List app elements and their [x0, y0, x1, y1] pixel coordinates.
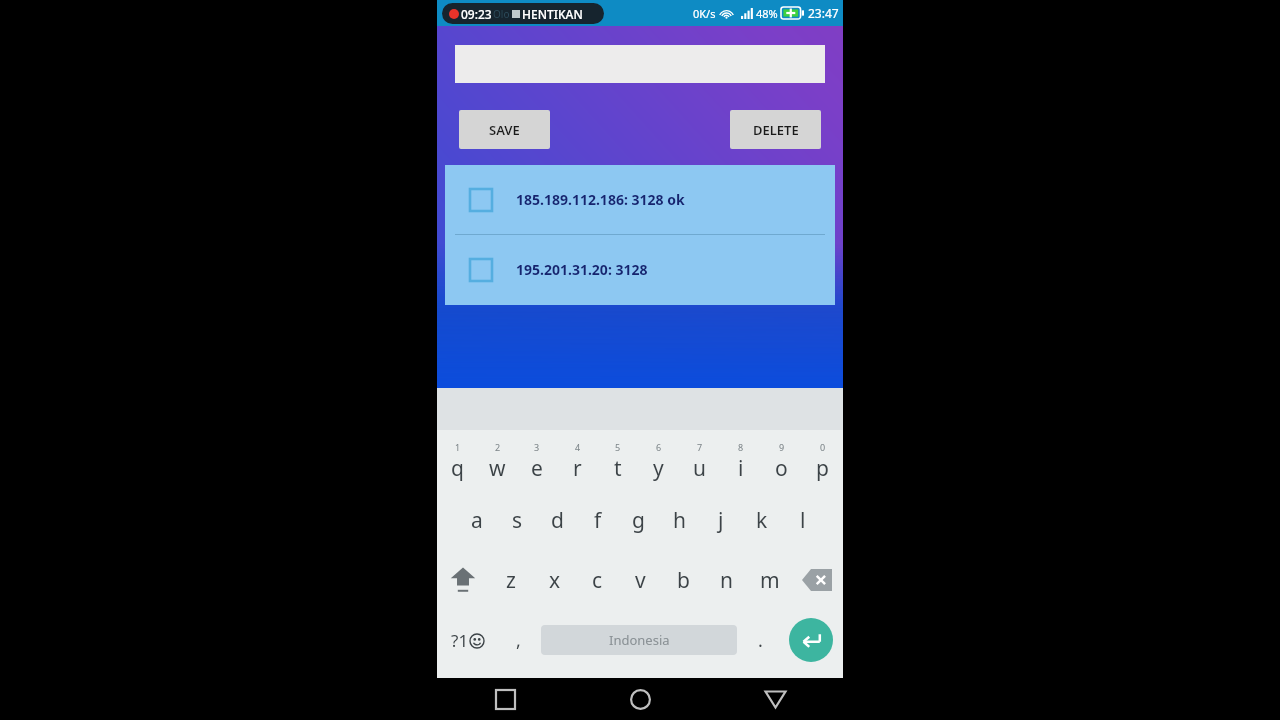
button[interactable]: 4 — [557, 433, 597, 490]
button[interactable]: Symbols and emoji — [437, 610, 499, 670]
staticText: 0K/s — [693, 6, 716, 21]
staticText: k — [756, 506, 768, 535]
staticText: ?1 — [451, 629, 469, 652]
staticText: g — [632, 506, 645, 535]
button[interactable]: 2 — [477, 433, 517, 490]
staticText: p — [816, 454, 829, 483]
button[interactable]: j — [700, 490, 741, 550]
staticText: m — [760, 566, 780, 595]
staticText: j — [718, 506, 724, 535]
staticText: 23:47 — [808, 5, 839, 21]
staticText: b — [677, 566, 690, 595]
staticText: SAVE — [489, 121, 520, 139]
staticText: 195.201.31.20: 3128 — [516, 260, 648, 279]
staticText: h — [673, 506, 686, 535]
button[interactable]: 195.201.31.20: 3128 — [445, 235, 835, 304]
staticText: d — [551, 506, 564, 535]
button[interactable]: f — [577, 490, 618, 550]
staticText: c — [592, 566, 603, 595]
button[interactable]: Backspace — [791, 550, 843, 610]
staticText: 3 — [534, 441, 540, 453]
button[interactable]: m — [748, 550, 791, 610]
staticText: l — [800, 506, 806, 535]
button[interactable]: c — [576, 550, 619, 610]
staticText: 09:23 — [461, 6, 492, 22]
staticText: 4 — [575, 441, 581, 453]
staticText: , — [516, 628, 521, 653]
button[interactable]: n — [705, 550, 748, 610]
button[interactable]: 8 — [720, 433, 761, 490]
staticText: f — [594, 506, 602, 535]
staticText: z — [506, 566, 516, 595]
button[interactable]: b — [662, 550, 705, 610]
staticText: t — [614, 454, 622, 483]
staticText: y — [653, 454, 664, 483]
button[interactable]: Recents — [437, 678, 573, 720]
button[interactable]: Stop recording — [442, 3, 604, 24]
button[interactable]: z — [489, 550, 533, 610]
button[interactable]: g — [618, 490, 659, 550]
button[interactable]: 5 — [597, 433, 638, 490]
button[interactable]: d — [537, 490, 577, 550]
staticText: 48% — [756, 6, 778, 21]
button[interactable]: Enter — [779, 610, 843, 670]
button[interactable]: 7 — [679, 433, 720, 490]
staticText: HENTIKAN — [522, 6, 583, 22]
button[interactable]: 3 — [517, 433, 557, 490]
button[interactable]: Back — [708, 678, 843, 720]
button[interactable]: 9 — [761, 433, 802, 490]
button[interactable]: 1 — [437, 433, 477, 490]
staticText: 2 — [495, 441, 501, 453]
staticText: Indonesia — [609, 631, 670, 649]
button[interactable]: 0 — [802, 433, 843, 490]
staticText: 9 — [779, 441, 785, 453]
staticText: 5 — [615, 441, 621, 453]
button[interactable]: a — [457, 490, 497, 550]
staticText: 0 — [820, 441, 826, 453]
staticText: 8 — [738, 441, 744, 453]
staticText: Olo — [493, 7, 510, 21]
button[interactable]: DELETE — [730, 110, 821, 149]
staticText: r — [573, 454, 582, 483]
button[interactable]: s — [497, 490, 537, 550]
button[interactable]: Indonesia — [541, 625, 737, 655]
button[interactable]: Shift — [437, 550, 489, 610]
staticText: 6 — [656, 441, 662, 453]
staticText: e — [531, 454, 543, 483]
button[interactable]: . — [741, 610, 779, 670]
staticText: i — [738, 454, 744, 483]
staticText: q — [451, 454, 464, 483]
button[interactable]: 185.189.112.186: 3128 ok — [445, 165, 835, 234]
staticText: s — [512, 506, 523, 535]
staticText: n — [720, 566, 733, 595]
button[interactable]: SAVE — [459, 110, 550, 149]
button[interactable]: v — [619, 550, 662, 610]
staticText: u — [693, 454, 706, 483]
button[interactable]: h — [659, 490, 700, 550]
button[interactable]: Home — [573, 678, 708, 720]
button[interactable]: , — [499, 610, 537, 670]
staticText: 1 — [455, 441, 461, 453]
staticText: v — [635, 566, 646, 595]
staticText: a — [471, 506, 483, 535]
button[interactable]: l — [782, 490, 823, 550]
staticText: o — [775, 454, 788, 483]
staticText: 7 — [697, 441, 703, 453]
staticText: x — [549, 566, 561, 595]
staticText: DELETE — [753, 121, 799, 139]
button[interactable]: 6 — [638, 433, 679, 490]
staticText: 185.189.112.186: 3128 ok — [516, 190, 685, 209]
staticText: w — [489, 454, 506, 483]
staticText: . — [758, 628, 763, 653]
button[interactable]: x — [533, 550, 576, 610]
button[interactable]: k — [741, 490, 782, 550]
